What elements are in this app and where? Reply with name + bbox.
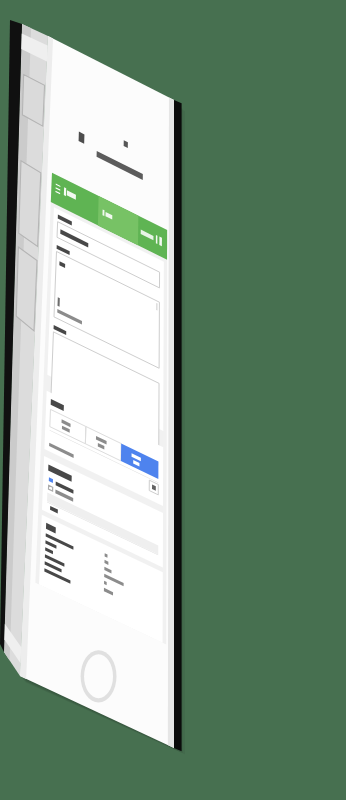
button[interactable]: SMS versenden — [58, 391, 94, 409]
button[interactable]: Rufnummer eingeben — [57, 158, 169, 180]
button[interactable]: Direct SMS — [128, 462, 158, 482]
button[interactable]: Empfänger auswählen — [57, 198, 169, 280]
button[interactable]: Verlauf Tab — [147, 126, 191, 150]
button[interactable]: Reset — [147, 390, 163, 406]
button[interactable]: Konto — [160, 133, 170, 145]
button[interactable]: Nachricht eingeben — [56, 294, 168, 384]
button[interactable]: Sofort senden — [57, 543, 109, 557]
button[interactable]: Zeitpunkt wählen — [56, 580, 158, 596]
button[interactable]: Später senden — [57, 556, 109, 570]
button[interactable]: Flash SMS — [146, 478, 162, 490]
button[interactable]: Economy SMS — [93, 459, 127, 479]
button[interactable]: Basic SMS — [57, 456, 91, 476]
